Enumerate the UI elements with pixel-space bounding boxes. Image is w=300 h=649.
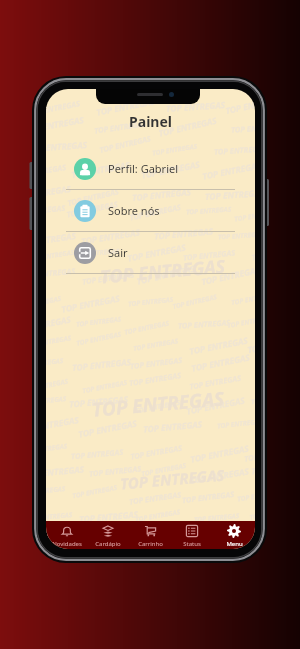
staticText: TOP ENTREGAS bbox=[60, 292, 122, 316]
staticText: TOP ENTREGAS bbox=[71, 447, 124, 461]
staticText: TOP ENTREGAS bbox=[190, 351, 252, 375]
staticText: Cardápio bbox=[95, 540, 121, 548]
staticText: TOP ENTREGAS bbox=[128, 370, 182, 388]
staticText: Status bbox=[183, 540, 201, 548]
staticText: TOP ENTREGAS bbox=[126, 241, 188, 265]
staticText: TOP ENTREGAS bbox=[72, 483, 118, 500]
staticText: TOP ENTREGAS bbox=[46, 510, 73, 523]
staticText: TOP ENTREGAS bbox=[205, 187, 255, 203]
staticText: TOP ENTREGAS bbox=[46, 139, 88, 155]
staticText: TOP ENTREGAS bbox=[46, 484, 66, 497]
button[interactable]: Cardápio bbox=[87, 522, 129, 548]
button[interactable]: Menu bbox=[213, 522, 255, 548]
staticText: TOP ENTREGAS bbox=[249, 503, 255, 522]
button[interactable]: Perfil: Gabriel bbox=[46, 148, 255, 190]
staticText: TOP ENTREGAS bbox=[189, 465, 250, 487]
staticText: TOP ENTREGAS bbox=[76, 527, 130, 547]
staticText: TOP ENTREGAS bbox=[231, 121, 255, 135]
staticText: TOP ENTREGAS bbox=[244, 446, 255, 464]
staticText: TOP ENTREGAS bbox=[128, 202, 182, 222]
staticText: Novidades bbox=[52, 540, 82, 548]
staticText: TOP ENTREGAS bbox=[46, 98, 81, 118]
staticText: TOP ENTREGAS bbox=[46, 394, 67, 407]
staticText: TOP ENTREGAS bbox=[214, 143, 255, 157]
staticText: TOP ENTREGAS bbox=[46, 463, 85, 481]
staticText: TOP ENTREGAS bbox=[157, 114, 219, 140]
staticText: TOP ENTREGAS bbox=[99, 254, 227, 289]
staticText: TOP ENTREGAS bbox=[46, 266, 76, 280]
staticText: TOP ENTREGAS bbox=[94, 118, 147, 136]
staticText: Sair bbox=[108, 245, 128, 260]
button[interactable]: Novidades bbox=[46, 522, 87, 548]
staticText: TOP ENTREGAS bbox=[124, 318, 170, 337]
staticText: TOP ENTREGAS bbox=[80, 226, 141, 248]
staticText: TOP ENTREGAS bbox=[46, 183, 72, 203]
staticText: TOP ENTREGAS bbox=[46, 203, 66, 217]
staticText: TOP ENTREGAS bbox=[91, 385, 226, 423]
staticText: Sobre nós bbox=[108, 203, 160, 218]
staticText: TOP ENTREGAS bbox=[135, 507, 181, 524]
staticText: TOP ENTREGAS bbox=[135, 398, 181, 415]
staticText: TOP ENTREGAS bbox=[188, 372, 242, 392]
staticText: TOP ENTREGAS bbox=[140, 158, 202, 182]
staticText: TOP ENTREGAS bbox=[67, 186, 120, 208]
staticText: TOP ENTREGAS bbox=[99, 133, 152, 155]
staticText: TOP ENTREGAS bbox=[74, 246, 120, 259]
staticText: TOP ENTREGAS bbox=[131, 186, 192, 204]
staticText: TOP ENTREGAS bbox=[46, 414, 81, 436]
staticText: TOP ENTREGAS bbox=[184, 89, 246, 96]
staticText: TOP ENTREGAS bbox=[46, 247, 75, 264]
staticText: TOP ENTREGAS bbox=[197, 520, 255, 544]
staticText: TOP ENTREGAS bbox=[46, 548, 84, 549]
staticText: TOP ENTREGAS bbox=[46, 333, 72, 350]
staticText: TOP ENTREGAS bbox=[201, 159, 255, 183]
staticText: TOP ENTREGAS bbox=[129, 489, 182, 507]
staticText: Menu bbox=[226, 540, 243, 548]
staticText: TOP ENTREGAS bbox=[200, 264, 255, 288]
staticText: TOP ENTREGAS bbox=[89, 463, 142, 479]
staticText: TOP ENTREGAS bbox=[154, 225, 214, 243]
button[interactable]: Carrinho bbox=[129, 522, 171, 548]
staticText: TOP ENTREGAS bbox=[141, 461, 187, 478]
staticText: TOP ENTREGAS bbox=[70, 159, 132, 181]
staticText: TOP ENTREGAS bbox=[251, 391, 255, 406]
staticText: TOP ENTREGAS bbox=[231, 290, 255, 307]
staticText: TOP ENTREGAS bbox=[152, 141, 198, 158]
staticText: TOP ENTREGAS bbox=[227, 313, 255, 330]
staticText: TOP ENTREGAS bbox=[194, 511, 240, 524]
staticText: TOP ENTREGAS bbox=[65, 199, 119, 219]
staticText: TOP ENTREGAS bbox=[246, 334, 255, 356]
button[interactable]: Sobre nós bbox=[46, 190, 255, 232]
staticText: TOP ENTREGAS bbox=[186, 204, 232, 217]
staticText: TOP ENTREGAS bbox=[188, 334, 250, 358]
staticText: TOP ENTREGAS bbox=[143, 418, 203, 436]
staticText: TOP ENTREGAS bbox=[82, 269, 135, 287]
staticText: Carrinho bbox=[138, 540, 163, 548]
staticText: TOP ENTREGAS bbox=[79, 508, 139, 526]
button[interactable]: Sair bbox=[46, 232, 255, 274]
staticText: TOP ENTREGAS bbox=[46, 162, 67, 180]
staticText: TOP ENTREGAS bbox=[95, 89, 230, 104]
staticText: TOP ENTREGAS bbox=[46, 441, 68, 456]
staticText: TOP ENTREGAS bbox=[128, 295, 174, 308]
staticText: TOP ENTREGAS bbox=[46, 294, 62, 311]
staticText: TOP ENTREGAS bbox=[250, 242, 255, 262]
staticText: TOP ENTREGAS bbox=[227, 543, 255, 549]
staticText: TOP ENTREGAS bbox=[182, 489, 235, 505]
staticText: TOP ENTREGAS bbox=[46, 230, 77, 250]
staticText: TOP ENTREGAS bbox=[154, 543, 216, 549]
staticText: TOP ENTREGAS bbox=[76, 314, 122, 329]
staticText: TOP ENTREGAS bbox=[46, 527, 77, 541]
button[interactable]: Status bbox=[171, 522, 213, 548]
staticText: TOP ENTREGAS bbox=[76, 329, 122, 348]
staticText: TOP ENTREGAS bbox=[46, 89, 64, 91]
staticText: TOP ENTREGAS bbox=[46, 376, 69, 395]
staticText: TOP ENTREGAS bbox=[178, 317, 231, 331]
staticText: Perfil: Gabriel bbox=[108, 161, 179, 176]
staticText: TOP ENTREGAS bbox=[95, 95, 157, 119]
staticText: TOP ENTREGAS bbox=[69, 393, 129, 411]
staticText: TOP ENTREGAS bbox=[137, 519, 198, 541]
staticText: TOP ENTREGAS bbox=[135, 262, 197, 288]
